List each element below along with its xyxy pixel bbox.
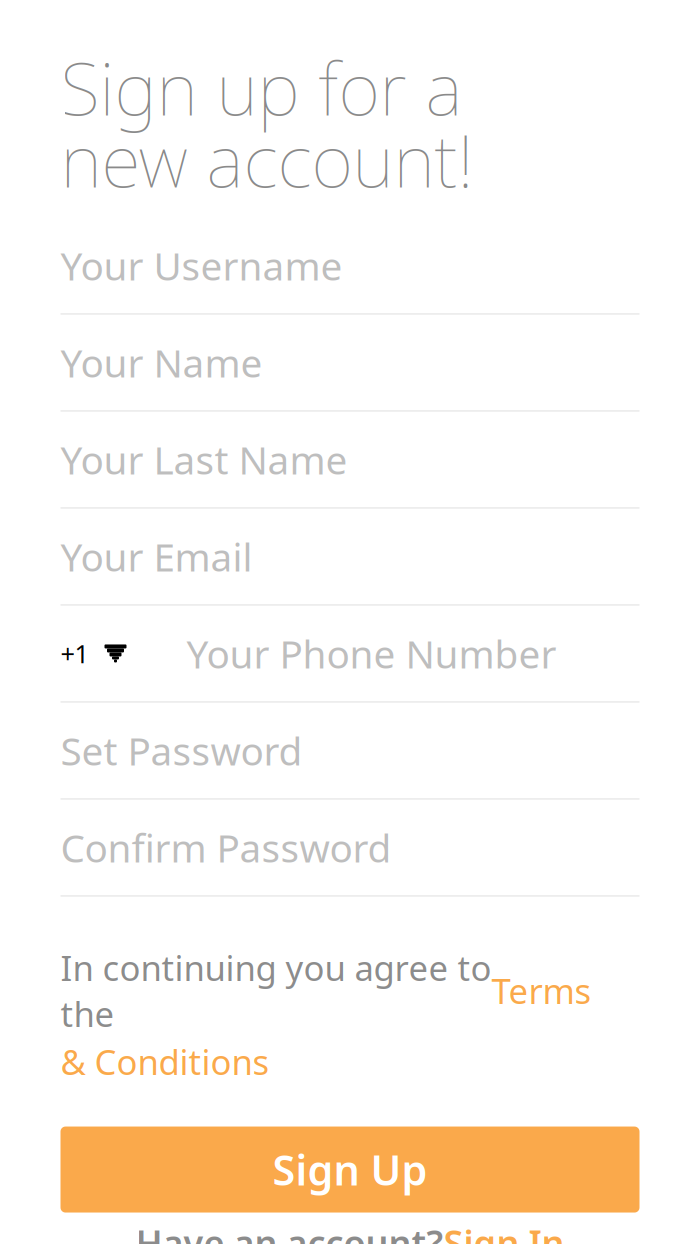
button[interactable]: Confirm Password	[60, 799, 639, 896]
button[interactable]: Your Email	[60, 508, 639, 605]
staticText: Sign In	[443, 1219, 564, 1244]
button[interactable]: Your Name	[60, 314, 639, 411]
button[interactable]: Sign In	[443, 1219, 564, 1244]
staticText: new account!	[60, 112, 473, 207]
button[interactable]: Your Username	[60, 217, 639, 314]
staticText: Terms	[491, 967, 591, 1013]
staticText: Have an account?	[135, 1219, 443, 1244]
staticText: Sign Up	[272, 1142, 427, 1197]
staticText: +1	[60, 637, 88, 670]
button[interactable]: & Conditions	[60, 1038, 639, 1084]
button[interactable]: Sign Up	[60, 1127, 639, 1213]
button[interactable]: Terms	[491, 967, 591, 1013]
staticText: & Conditions	[60, 1038, 269, 1084]
staticText: In continuing you agree to the	[60, 944, 491, 1036]
staticText: Set Password	[60, 725, 302, 776]
staticText: Your Email	[60, 531, 252, 582]
staticText: Your Username	[60, 240, 342, 291]
button[interactable]: Your Last Name	[60, 411, 639, 508]
staticText: Sign up for a	[60, 40, 462, 135]
staticText: Confirm Password	[60, 822, 391, 873]
staticText: Your Name	[60, 337, 262, 388]
staticText: Your Phone Number	[186, 628, 556, 679]
staticText: Your Last Name	[60, 434, 347, 485]
button[interactable]: Set Password	[60, 702, 639, 799]
button[interactable]: Country code +1	[60, 605, 639, 702]
